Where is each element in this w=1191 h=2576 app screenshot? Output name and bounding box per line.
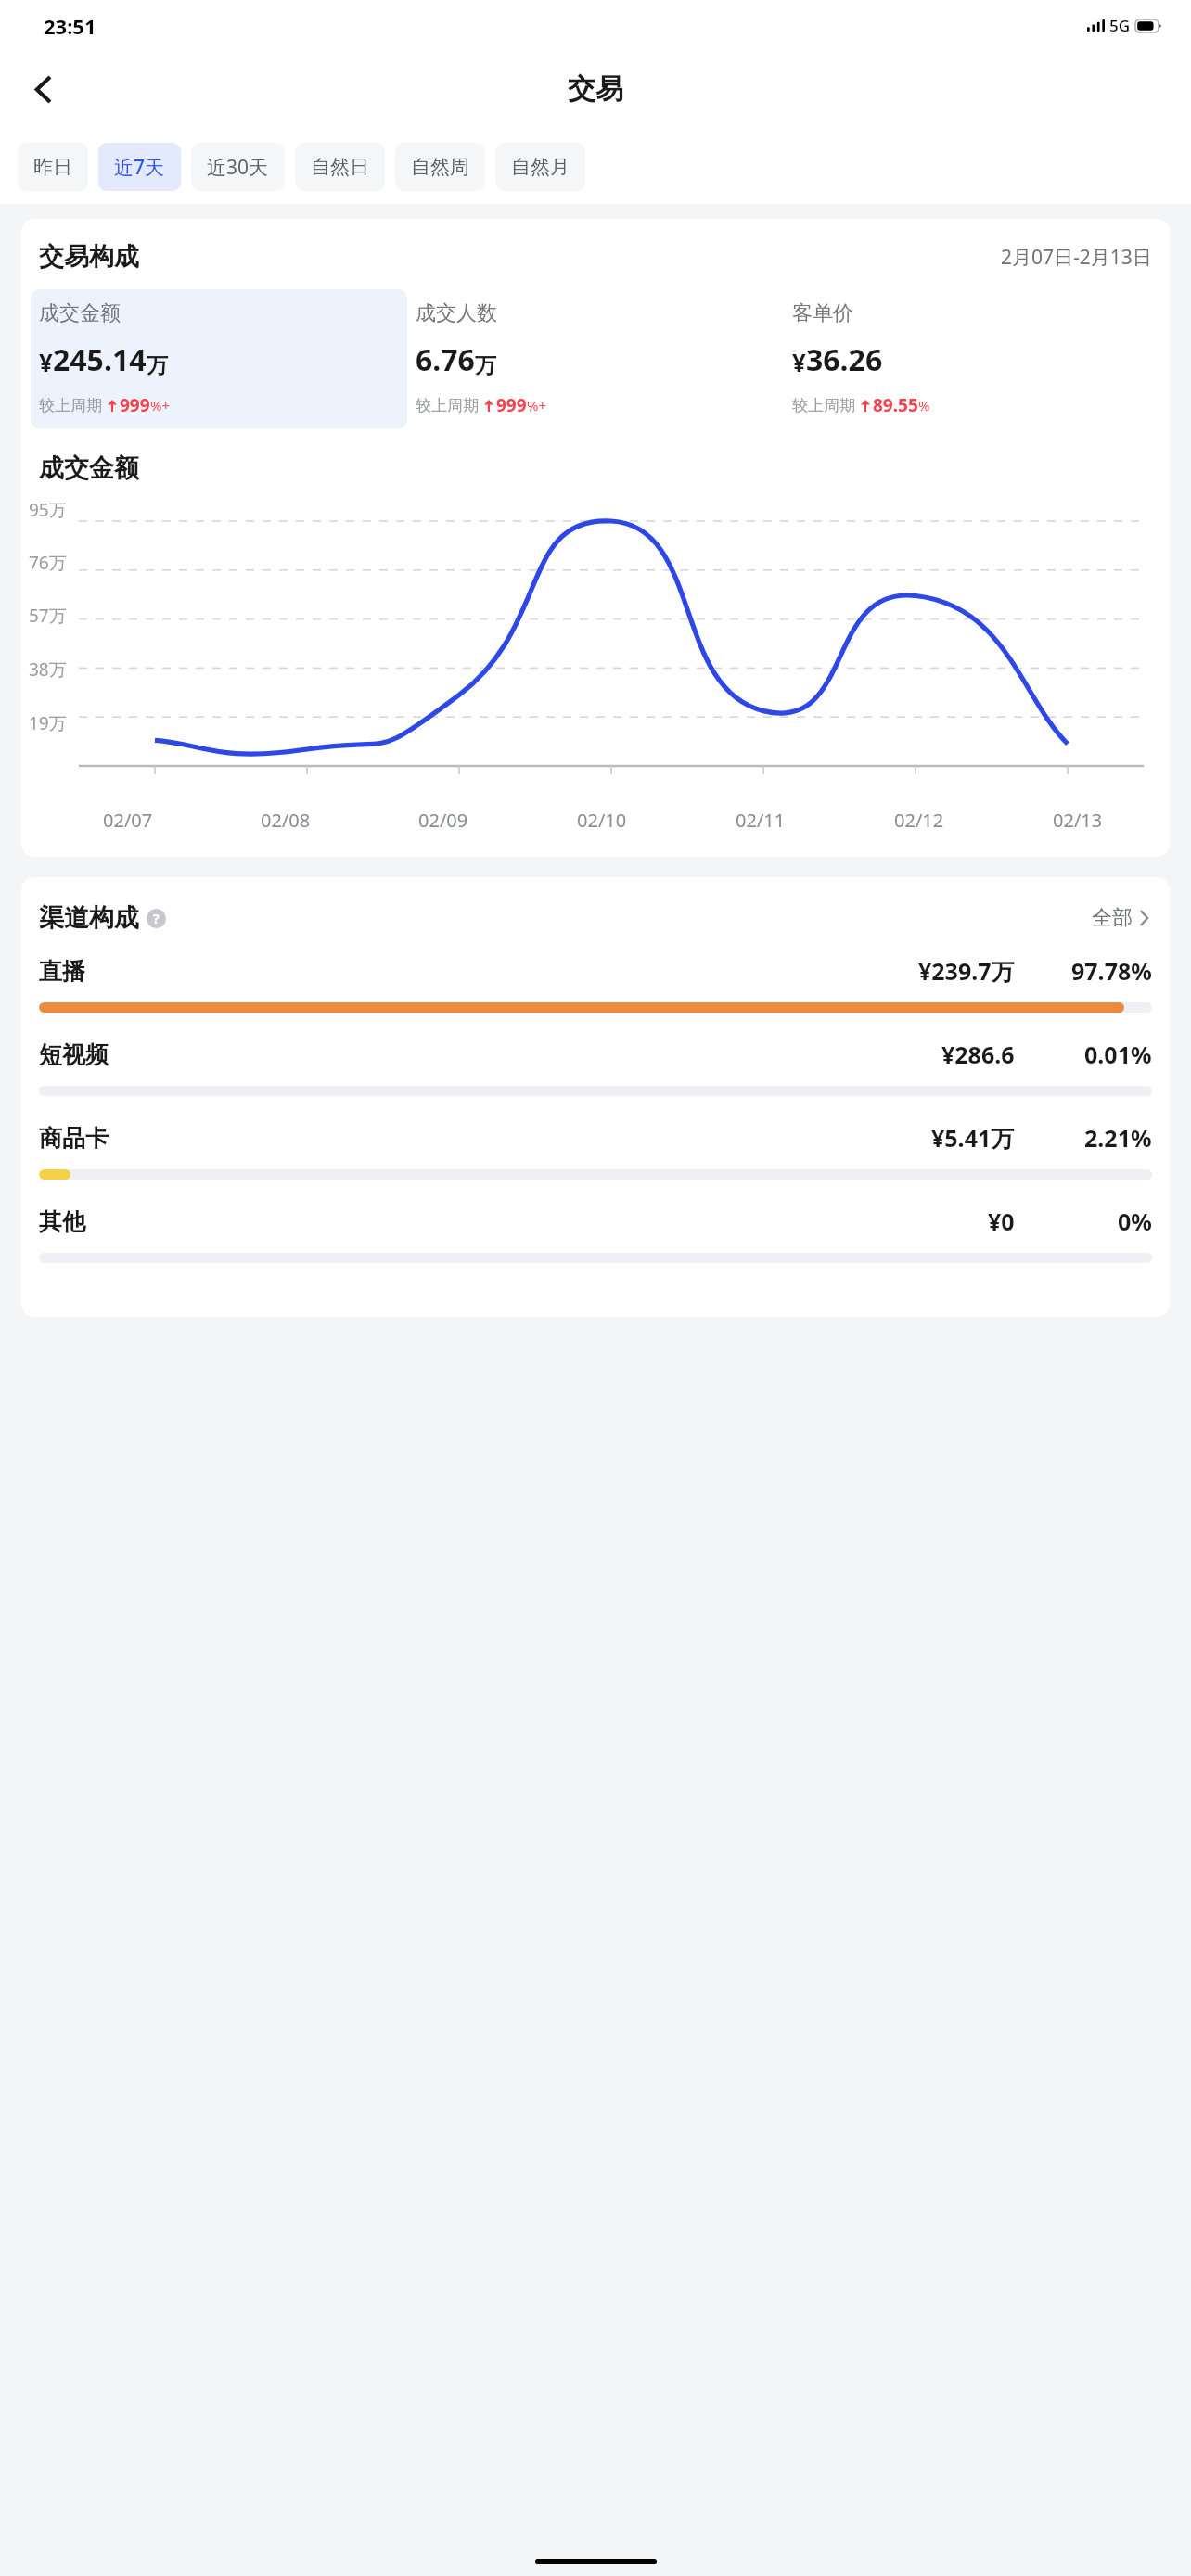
staticText: 商品卡	[39, 1124, 109, 1153]
button[interactable]: 其他	[39, 1205, 1152, 1289]
staticText: 全部	[1092, 905, 1133, 931]
button[interactable]: 成交人数	[407, 289, 784, 428]
button[interactable]: 近30天	[191, 143, 285, 191]
staticText: 999	[120, 393, 150, 417]
button[interactable]: 近7天	[98, 143, 181, 191]
staticText: 万	[147, 352, 168, 379]
staticText: ¥	[39, 346, 53, 378]
button[interactable]: 自然周	[395, 143, 485, 191]
staticText: %	[918, 396, 930, 414]
button[interactable]: 直播	[39, 955, 1152, 1039]
staticText: 245.14	[53, 339, 147, 380]
staticText: ¥239.7万	[918, 955, 1015, 987]
staticText: 97.78%	[1071, 955, 1152, 987]
staticText: 自然月	[511, 155, 570, 179]
staticText: %+	[150, 396, 171, 414]
staticText: 19万	[29, 711, 67, 735]
staticText: 渠道构成	[39, 902, 139, 934]
button[interactable]: 成交金额	[31, 289, 407, 428]
staticText: 2.21%	[1084, 1122, 1152, 1154]
button[interactable]: 客单价	[784, 289, 1160, 428]
staticText: 6.76	[416, 339, 475, 380]
staticText: ¥5.41万	[931, 1122, 1015, 1154]
staticText: 较上周期	[792, 396, 855, 415]
staticText: 95万	[29, 498, 67, 522]
button[interactable]: Back	[17, 63, 69, 115]
staticText: 成交金额	[39, 453, 139, 484]
staticText: 57万	[29, 604, 67, 628]
button[interactable]: 全部	[1088, 901, 1152, 935]
staticText: 昨日	[33, 155, 72, 179]
staticText: 万	[475, 352, 496, 379]
staticText: 较上周期	[416, 396, 479, 415]
staticText: 交易	[568, 71, 623, 107]
button[interactable]: 短视频	[39, 1039, 1152, 1122]
staticText: 自然日	[311, 155, 369, 179]
staticText: 自然周	[411, 155, 469, 179]
staticText: %+	[527, 396, 547, 414]
staticText: ¥	[792, 346, 806, 378]
staticText: 2月07日-2月13日	[1001, 244, 1152, 271]
button[interactable]: 自然月	[495, 143, 585, 191]
staticText: 5G	[1109, 15, 1131, 36]
staticText: 直播	[39, 957, 85, 986]
button[interactable]: Help	[147, 909, 166, 928]
staticText: 近7天	[114, 154, 165, 181]
staticText: 38万	[29, 657, 67, 682]
staticText: 0.01%	[1084, 1039, 1152, 1070]
staticText: 02/13	[1053, 808, 1103, 833]
staticText: 客单价	[792, 300, 853, 326]
staticText: ¥286.6	[941, 1039, 1015, 1070]
staticText: 0%	[1118, 1205, 1152, 1237]
staticText: 成交金额	[39, 300, 121, 326]
button[interactable]: 自然日	[295, 143, 385, 191]
staticText: 近30天	[207, 154, 269, 181]
staticText: 999	[496, 393, 527, 417]
staticText: 较上周期	[39, 396, 102, 415]
staticText: 成交人数	[416, 300, 497, 326]
staticText: 02/10	[577, 808, 627, 833]
button[interactable]: 商品卡	[39, 1122, 1152, 1205]
staticText: 02/08	[261, 808, 311, 833]
staticText: 交易构成	[39, 241, 139, 273]
staticText: 89.55	[873, 393, 918, 417]
staticText: ?	[153, 910, 160, 927]
staticText: 36.26	[806, 339, 883, 380]
staticText: ¥0	[988, 1205, 1015, 1237]
button[interactable]: 昨日	[18, 143, 88, 191]
staticText: 76万	[29, 551, 67, 575]
staticText: 02/12	[894, 808, 944, 833]
staticText: 02/11	[736, 808, 786, 833]
staticText: 其他	[39, 1207, 85, 1236]
staticText: 02/09	[418, 808, 468, 833]
staticText: 02/07	[103, 808, 153, 833]
staticText: 短视频	[39, 1040, 109, 1069]
staticText: 23:51	[44, 12, 96, 40]
